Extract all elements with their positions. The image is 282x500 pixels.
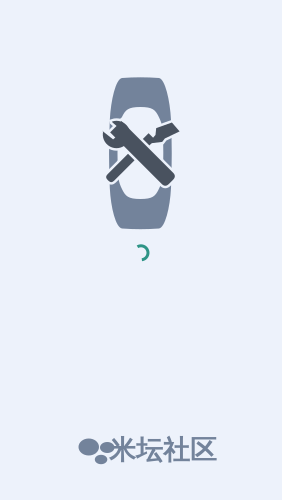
staticText: 米坛社区 [109,434,217,466]
